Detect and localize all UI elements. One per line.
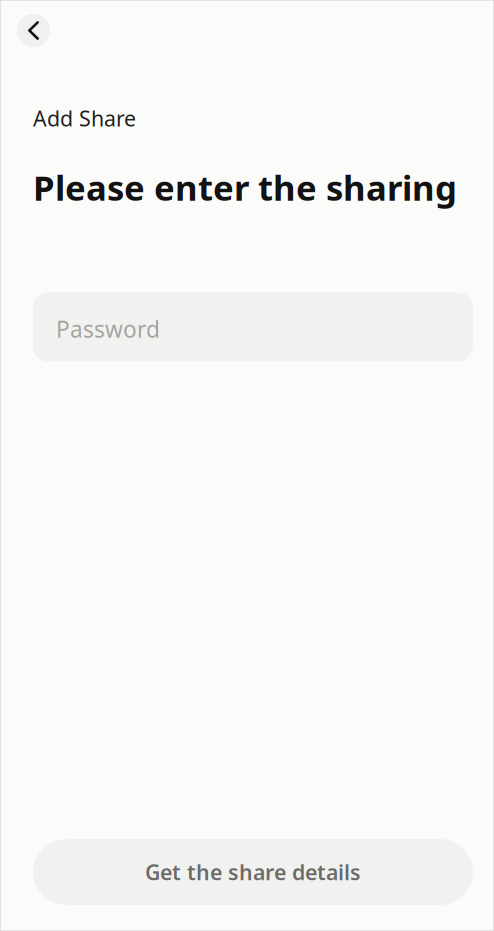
staticText: Add Share	[33, 104, 136, 132]
staticText: Password	[56, 314, 160, 344]
button[interactable]: Get the share details	[33, 839, 473, 905]
staticText: Please enter the sharing	[33, 164, 457, 210]
button[interactable]: Password	[33, 292, 473, 361]
staticText: Get the share details	[145, 858, 361, 886]
button[interactable]: Back	[17, 14, 50, 47]
